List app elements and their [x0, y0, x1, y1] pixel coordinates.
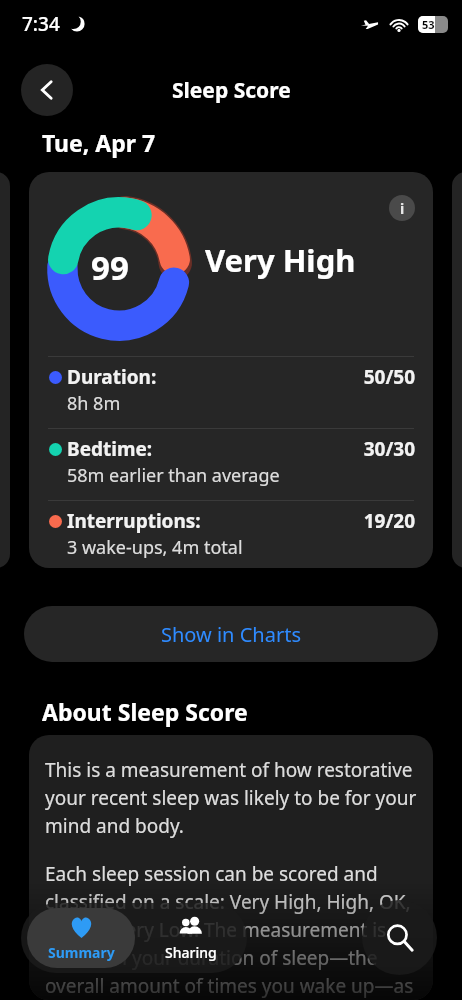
button[interactable]	[452, 172, 462, 568]
button[interactable]: This is a measurement of how restorative…	[29, 735, 433, 1000]
staticText: Interruptions:	[67, 508, 201, 534]
staticText: Show in Charts	[161, 621, 301, 648]
staticText: 50/50	[329, 364, 415, 390]
staticText: 8h 8m	[67, 391, 121, 416]
staticText: 19/20	[329, 508, 415, 534]
button[interactable]: Back	[21, 64, 73, 116]
staticText: 53	[422, 17, 435, 32]
staticText: Sharing	[165, 943, 217, 962]
staticText: 99	[91, 245, 129, 290]
button[interactable]: Search	[362, 900, 437, 975]
button[interactable]: Show in Charts	[24, 606, 438, 662]
button[interactable]: Interruptions:	[29, 501, 433, 568]
staticText: Duration:	[67, 364, 157, 390]
staticText: Tue, Apr 7	[42, 127, 156, 158]
button[interactable]: Info about sleep score	[389, 195, 415, 221]
button[interactable]: Bedtime:	[29, 429, 433, 500]
button[interactable]: Info about sleep score	[29, 172, 433, 568]
button[interactable]: Summary	[27, 908, 135, 968]
staticText: 30/30	[329, 436, 415, 462]
button[interactable]	[0, 172, 10, 568]
staticText: About Sleep Score	[42, 696, 248, 727]
staticText: i	[400, 199, 405, 218]
button[interactable]: Sharing	[139, 908, 243, 968]
staticText: Very High	[205, 239, 356, 281]
staticText: Bedtime:	[67, 436, 153, 462]
staticText: Summary	[48, 943, 115, 962]
staticText: 7:34	[22, 11, 60, 37]
staticText: Each sleep session can be scored and cla…	[45, 861, 419, 1000]
staticText: This is a measurement of how restorative…	[45, 757, 419, 839]
staticText: Sleep Score	[172, 76, 291, 105]
button[interactable]: Duration:	[29, 357, 433, 428]
staticText: 58m earlier than average	[67, 463, 280, 488]
staticText: 3 wake-ups, 4m total	[67, 535, 243, 560]
